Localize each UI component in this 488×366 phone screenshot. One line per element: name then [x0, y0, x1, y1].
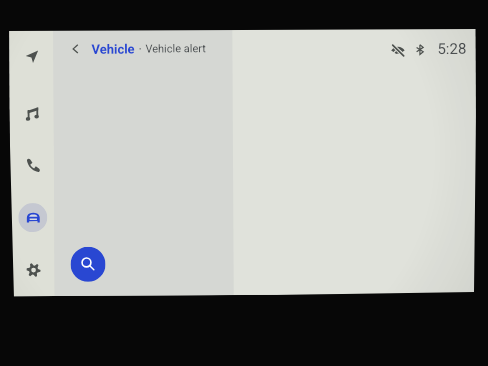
button[interactable]: Vehicle [18, 203, 47, 232]
button[interactable]: Navigation [17, 42, 47, 71]
other: No network [391, 43, 404, 56]
button[interactable]: Settings [18, 255, 48, 284]
button[interactable]: Search [70, 247, 106, 282]
button[interactable]: Back [62, 36, 88, 62]
staticText: · [138, 41, 142, 56]
button[interactable]: Vehicle [91, 42, 135, 57]
staticText: Vehicle alert [145, 42, 206, 55]
button[interactable]: Phone [18, 150, 47, 179]
button[interactable]: Media [18, 99, 47, 128]
staticText: 5:28 [437, 40, 466, 58]
